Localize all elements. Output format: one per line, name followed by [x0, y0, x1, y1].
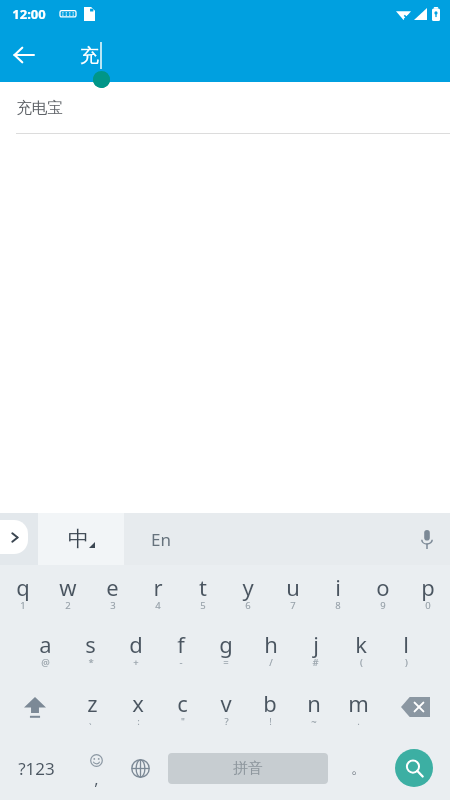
button[interactable]: Expand toolbar	[0, 520, 28, 554]
staticText: 4	[155, 599, 161, 612]
staticText: -	[179, 656, 183, 669]
staticText: /	[269, 656, 273, 669]
button[interactable]: Shift	[0, 679, 70, 739]
staticText: 12:00	[12, 5, 46, 23]
button[interactable]: z	[70, 679, 115, 739]
button[interactable]: Voice input	[402, 515, 450, 563]
button[interactable]: w	[45, 565, 90, 622]
staticText: ?	[224, 715, 229, 728]
staticText: x	[132, 688, 144, 718]
staticText: 3	[110, 599, 116, 612]
staticText: p	[421, 572, 435, 602]
staticText: m	[348, 688, 369, 718]
staticText: u	[286, 572, 300, 602]
staticText: 6	[245, 599, 251, 612]
button[interactable]: c	[160, 679, 204, 739]
button[interactable]: Change language	[118, 739, 162, 797]
button[interactable]: y	[225, 565, 270, 622]
button[interactable]: 中	[38, 513, 124, 565]
staticText: !	[269, 715, 272, 728]
staticText: 1	[20, 599, 26, 612]
button[interactable]: u	[270, 565, 315, 622]
staticText: 0	[425, 599, 431, 612]
button[interactable]: n	[292, 679, 336, 739]
staticText: d	[129, 629, 143, 659]
button[interactable]: o	[360, 565, 405, 622]
staticText: 8	[335, 599, 341, 612]
button[interactable]: k	[338, 622, 383, 679]
staticText: b	[263, 688, 277, 718]
staticText: i	[335, 572, 341, 602]
staticText: .	[357, 715, 360, 728]
button[interactable]: v	[204, 679, 248, 739]
staticText: 5	[200, 599, 206, 612]
button[interactable]: Backspace	[380, 679, 450, 739]
staticText: t	[199, 572, 207, 602]
staticText: o	[376, 572, 390, 602]
button[interactable]: ?123	[0, 739, 72, 797]
button[interactable]: 充电宝	[0, 82, 450, 133]
button[interactable]: t	[180, 565, 225, 622]
button[interactable]: g	[203, 622, 248, 679]
button[interactable]: l	[383, 622, 428, 679]
staticText: 、	[88, 715, 98, 727]
staticText: a	[39, 629, 52, 659]
staticText: 充电宝	[16, 98, 63, 118]
staticText: ,	[94, 768, 99, 790]
staticText: 拼音	[233, 759, 263, 778]
button[interactable]: s	[68, 622, 113, 679]
button[interactable]: h	[248, 622, 293, 679]
staticText: h	[264, 629, 278, 659]
staticText: c	[177, 688, 188, 718]
button[interactable]: Search	[395, 749, 433, 787]
button[interactable]: p	[405, 565, 450, 622]
staticText: +	[133, 656, 139, 669]
staticText: y	[242, 572, 254, 602]
staticText: En	[151, 528, 171, 551]
staticText: q	[16, 572, 30, 602]
button[interactable]: a	[22, 622, 68, 679]
staticText: e	[106, 572, 119, 602]
button[interactable]: Emoji and comma	[72, 739, 120, 797]
staticText: 。	[351, 759, 366, 778]
button[interactable]: x	[115, 679, 160, 739]
staticText: z	[87, 688, 98, 718]
button[interactable]: m	[336, 679, 380, 739]
staticText: 充	[80, 44, 99, 68]
button[interactable]: j	[293, 622, 338, 679]
button[interactable]: d	[113, 622, 158, 679]
button[interactable]: i	[315, 565, 360, 622]
staticText: l	[403, 629, 409, 659]
staticText: v	[220, 688, 232, 718]
staticText: )	[405, 656, 408, 669]
staticText: f	[177, 629, 185, 659]
staticText: #	[312, 656, 319, 669]
button[interactable]: q	[0, 565, 45, 622]
staticText: =	[223, 656, 229, 669]
staticText: 2	[65, 599, 71, 612]
staticText: *	[88, 656, 94, 669]
staticText: j	[313, 629, 319, 659]
button[interactable]: Back	[0, 31, 48, 79]
button[interactable]: En	[124, 513, 450, 565]
staticText: ?123	[18, 757, 55, 780]
staticText: r	[153, 572, 163, 602]
staticText: "	[181, 715, 185, 728]
staticText: 9	[380, 599, 386, 612]
staticText: 中	[68, 526, 89, 552]
staticText: w	[59, 572, 77, 602]
button[interactable]: 。	[336, 739, 380, 797]
button[interactable]: e	[90, 565, 135, 622]
staticText: n	[307, 688, 321, 718]
staticText: (	[360, 656, 363, 669]
button[interactable]: f	[158, 622, 203, 679]
staticText: :	[137, 715, 140, 728]
staticText: ~	[311, 715, 317, 728]
button[interactable]: b	[248, 679, 292, 739]
staticText: 7	[290, 599, 296, 612]
button[interactable]: 拼音	[168, 753, 328, 784]
staticText: g	[219, 629, 233, 659]
staticText: s	[85, 629, 96, 659]
button[interactable]: r	[135, 565, 180, 622]
staticText: @	[41, 656, 50, 669]
